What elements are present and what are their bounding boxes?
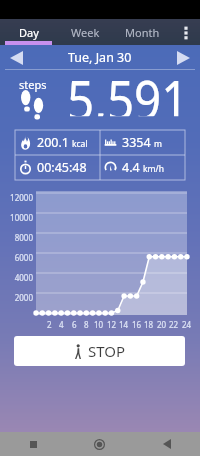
- staticText: Week: [71, 25, 100, 40]
- staticText: 10000: [0, 212, 33, 223]
- staticText: kcal: [72, 138, 88, 150]
- staticText: 200.1: [37, 134, 69, 151]
- staticText: 10: [94, 319, 104, 330]
- button[interactable]: STOP: [14, 336, 185, 366]
- button[interactable]: Next day: [170, 45, 196, 70]
- staticText: km/h: [143, 163, 164, 175]
- staticText: Tue, Jan 30: [68, 49, 132, 66]
- button[interactable]: Previous day: [3, 45, 29, 70]
- button[interactable]: More options: [171, 19, 200, 45]
- staticText: 4: [59, 319, 64, 330]
- button[interactable]: Back: [133, 432, 200, 456]
- staticText: 14: [119, 319, 129, 330]
- button[interactable]: 200.1: [15, 130, 100, 155]
- staticText: 5,591: [67, 62, 189, 116]
- button[interactable]: 3354: [100, 130, 185, 155]
- staticText: 2000: [0, 292, 33, 303]
- button[interactable]: 00:45:48: [15, 155, 100, 180]
- staticText: 12: [107, 319, 117, 330]
- staticText: Month: [125, 25, 160, 40]
- button[interactable]: Month: [114, 19, 171, 45]
- staticText: 3354: [122, 134, 151, 151]
- staticText: 16: [132, 319, 142, 330]
- staticText: steps: [19, 77, 47, 92]
- button[interactable]: Day: [0, 19, 57, 45]
- button[interactable]: Home: [66, 432, 133, 456]
- staticText: m: [154, 138, 162, 150]
- staticText: 6: [72, 319, 77, 330]
- staticText: 00:45:48: [37, 159, 87, 176]
- button[interactable]: Week: [57, 19, 114, 45]
- staticText: 2: [47, 319, 52, 330]
- staticText: 4.4: [122, 159, 140, 176]
- staticText: 12000: [0, 192, 33, 203]
- staticText: 24: [182, 319, 192, 330]
- staticText: 8000: [0, 232, 33, 243]
- staticText: Day: [19, 25, 39, 40]
- button[interactable]: Recents: [0, 432, 66, 456]
- staticText: 4000: [0, 272, 33, 283]
- staticText: 8: [84, 319, 89, 330]
- staticText: 22: [169, 319, 179, 330]
- staticText: STOP: [88, 341, 126, 361]
- button[interactable]: 4.4: [100, 155, 185, 180]
- staticText: 6000: [0, 252, 33, 263]
- staticText: 18: [144, 319, 154, 330]
- staticText: 20: [157, 319, 167, 330]
